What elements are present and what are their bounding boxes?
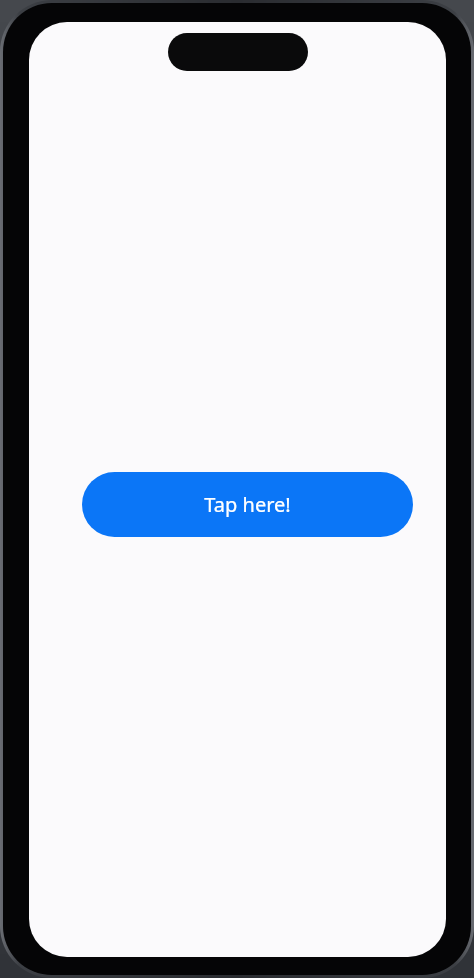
button[interactable]: Tap here!: [82, 472, 413, 537]
staticText: Tap here!: [204, 491, 291, 518]
